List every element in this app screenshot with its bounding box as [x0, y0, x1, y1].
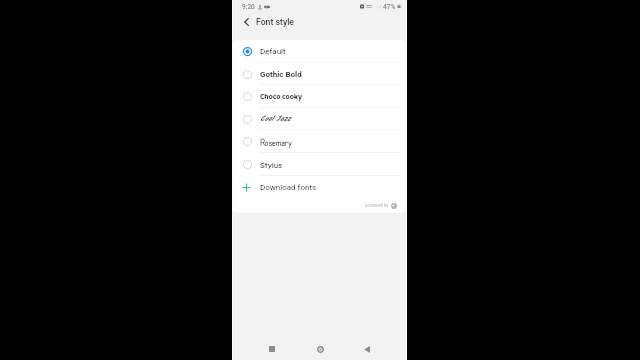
staticText: Stylus: [260, 160, 283, 170]
staticText: Default: [260, 47, 286, 56]
staticText: powered by: [365, 203, 389, 208]
staticText: 9:20: [242, 3, 255, 11]
staticText: Download fonts: [260, 183, 317, 192]
staticText: Cool Jazz: [260, 113, 291, 125]
button[interactable]: Rosemary: [233, 130, 406, 153]
button[interactable]: Stylus: [233, 153, 406, 176]
button[interactable]: Back: [356, 340, 378, 358]
staticText: Choco cooky: [260, 91, 302, 103]
staticText: Gothic Bold: [260, 70, 302, 79]
button[interactable]: Cool Jazz: [233, 108, 406, 130]
button[interactable]: Choco cooky: [233, 85, 406, 108]
button[interactable]: Recent apps: [261, 340, 283, 358]
button[interactable]: Gothic Bold: [233, 63, 406, 85]
button[interactable]: Download fonts: [233, 176, 406, 198]
button[interactable]: Default: [233, 40, 406, 63]
staticText: 47%: [383, 3, 396, 11]
staticText: Font style: [256, 17, 294, 27]
button[interactable]: Navigate up: [239, 15, 253, 29]
button[interactable]: Home: [309, 340, 331, 358]
staticText: Rosemary: [260, 136, 292, 148]
